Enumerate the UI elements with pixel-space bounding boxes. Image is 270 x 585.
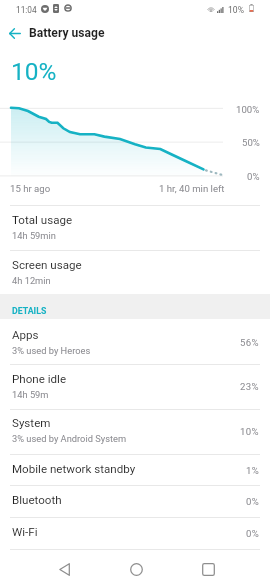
staticText: 14h 59m	[12, 389, 49, 400]
button[interactable]: Screen usage	[0, 250, 270, 295]
staticText: 56%	[240, 337, 260, 348]
staticText: 10%	[240, 426, 260, 437]
staticText: 15 hr ago	[10, 183, 51, 194]
staticText: 1 hr, 40 min left	[159, 183, 225, 194]
staticText: Phone idle	[12, 372, 67, 386]
button[interactable]: Mobile network standby	[0, 454, 270, 486]
staticText: Mobile network standby	[12, 462, 244, 476]
staticText: 4h 12min	[12, 275, 51, 286]
staticText: Battery usage	[29, 26, 105, 40]
staticText: Bluetooth	[12, 493, 244, 507]
staticText: 0%	[247, 171, 260, 182]
staticText: 0%	[246, 528, 260, 539]
staticText: Screen usage	[12, 258, 82, 272]
staticText: 50%	[242, 137, 260, 148]
button[interactable]: Apps	[0, 320, 270, 365]
staticText: 10%	[228, 5, 244, 15]
button[interactable]: Wi-Fi	[0, 517, 270, 549]
staticText: Wi-Fi	[12, 525, 244, 539]
staticText: 100%	[236, 104, 260, 115]
staticText: 3% used by Heroes	[12, 345, 91, 356]
staticText: 0%	[246, 496, 260, 507]
staticText: 23%	[240, 381, 260, 392]
button[interactable]: Bluetooth	[0, 485, 270, 517]
staticText: 14h 59min	[12, 230, 56, 241]
staticText: Total usage	[12, 213, 73, 227]
staticText: DETAILS	[12, 306, 47, 316]
button[interactable]: Back	[0, 20, 29, 46]
button[interactable]: Recents	[184, 552, 232, 585]
staticText: 3% used by Android System	[12, 433, 127, 444]
button[interactable]: Phone idle	[0, 364, 270, 409]
staticText: 10%	[11, 57, 57, 86]
staticText: 1%	[246, 465, 260, 476]
button[interactable]: Back	[40, 552, 88, 585]
button[interactable]: Total usage	[0, 205, 270, 250]
button[interactable]: Home	[112, 552, 160, 585]
staticText: System	[12, 416, 51, 430]
button[interactable]: System	[0, 409, 270, 453]
staticText: 11:04	[16, 5, 37, 15]
staticText: Apps	[12, 328, 39, 342]
